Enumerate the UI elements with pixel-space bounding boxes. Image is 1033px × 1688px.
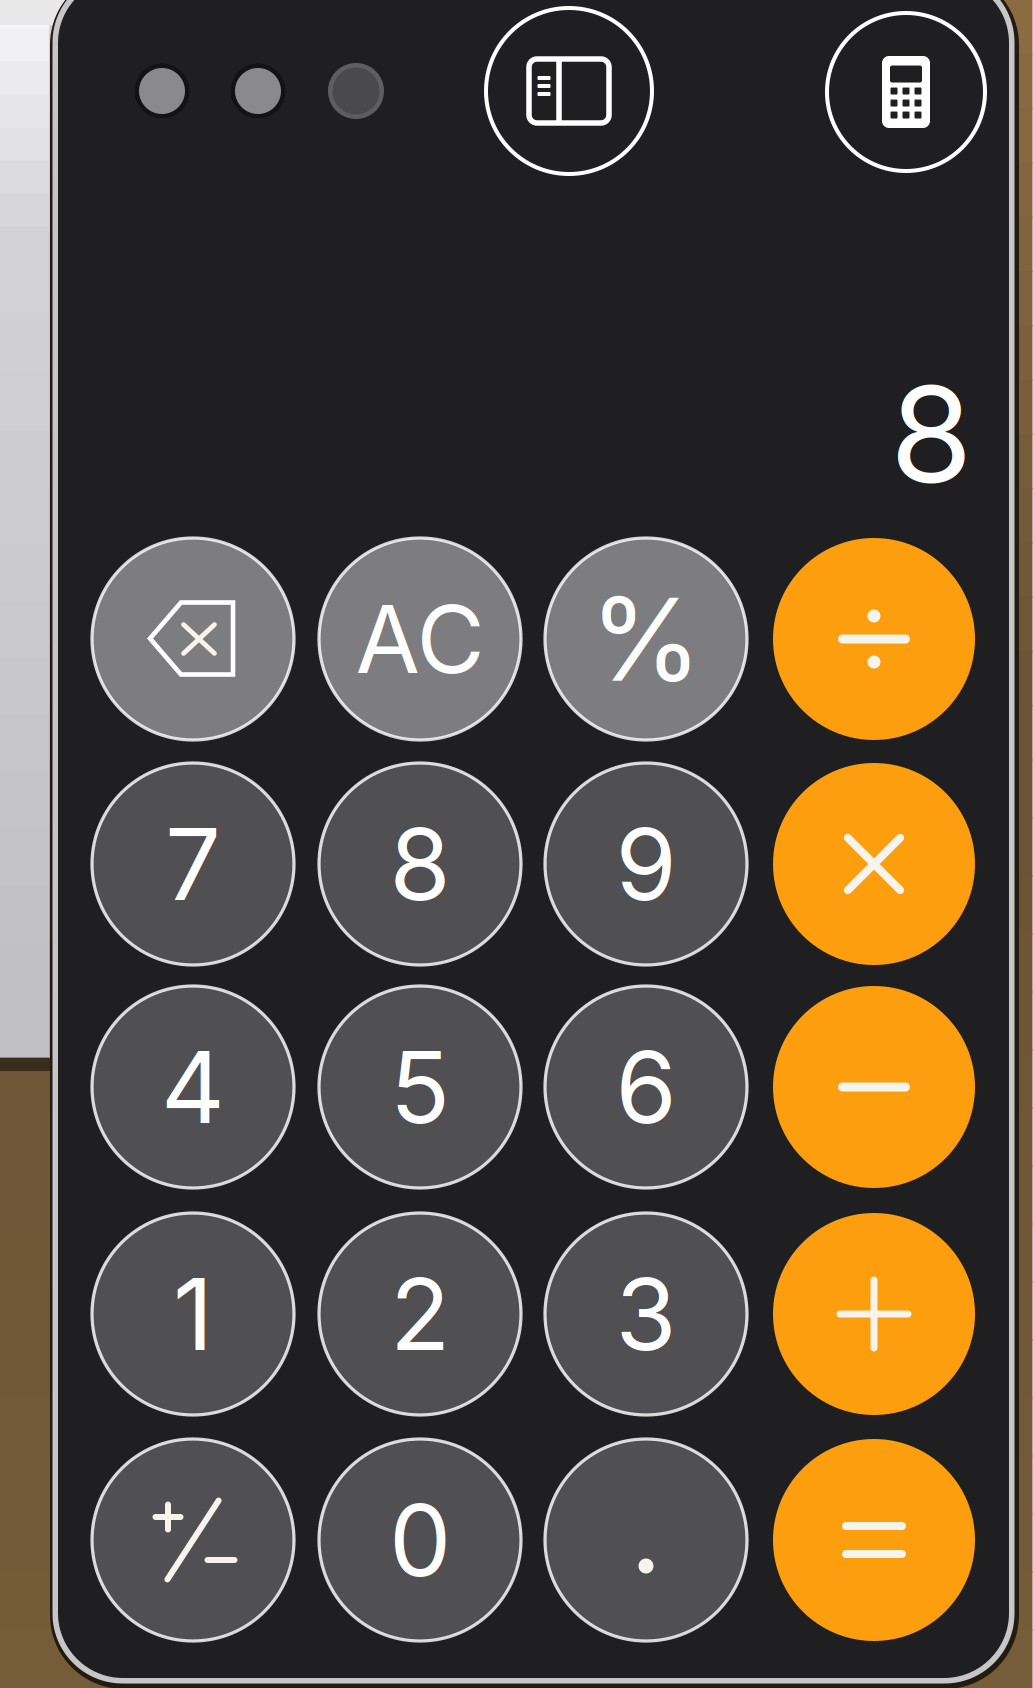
staticText: 2 — [390, 1254, 450, 1374]
button[interactable]: Decimal point — [545, 1439, 747, 1641]
button[interactable]: 5 — [319, 986, 521, 1188]
button[interactable]: Add — [773, 1213, 975, 1415]
button[interactable]: 4 — [92, 986, 294, 1188]
staticText: 7 — [165, 804, 221, 924]
button[interactable]: AC — [319, 538, 521, 740]
button[interactable]: 9 — [545, 763, 747, 965]
button[interactable]: Calculator — [822, 8, 990, 176]
staticText: 8 — [890, 353, 972, 515]
staticText: 3 — [615, 1254, 676, 1374]
button[interactable]: 8 — [319, 763, 521, 965]
staticText: % — [589, 570, 702, 708]
button[interactable]: Multiply — [773, 763, 975, 965]
staticText: AC — [355, 582, 484, 695]
staticText: 1 — [173, 1254, 213, 1374]
button[interactable]: Equals — [773, 1439, 975, 1641]
button[interactable]: % — [545, 538, 747, 740]
button[interactable]: 7 — [92, 763, 294, 965]
button[interactable]: Subtract — [773, 986, 975, 1188]
button[interactable]: Delete — [92, 538, 294, 740]
button[interactable]: 6 — [545, 986, 747, 1188]
button[interactable]: Divide — [773, 538, 975, 740]
staticText: 4 — [161, 1027, 225, 1147]
staticText: 0 — [389, 1480, 451, 1600]
button[interactable]: 1 — [92, 1213, 294, 1415]
button[interactable]: 3 — [545, 1213, 747, 1415]
button[interactable]: Plus minus — [92, 1439, 294, 1641]
staticText: 9 — [615, 804, 676, 924]
button[interactable]: History — [481, 3, 657, 179]
staticText: 8 — [389, 804, 450, 924]
staticText: 6 — [615, 1027, 676, 1147]
staticText: 5 — [390, 1027, 450, 1147]
button[interactable]: 2 — [319, 1213, 521, 1415]
button[interactable]: 0 — [319, 1439, 521, 1641]
